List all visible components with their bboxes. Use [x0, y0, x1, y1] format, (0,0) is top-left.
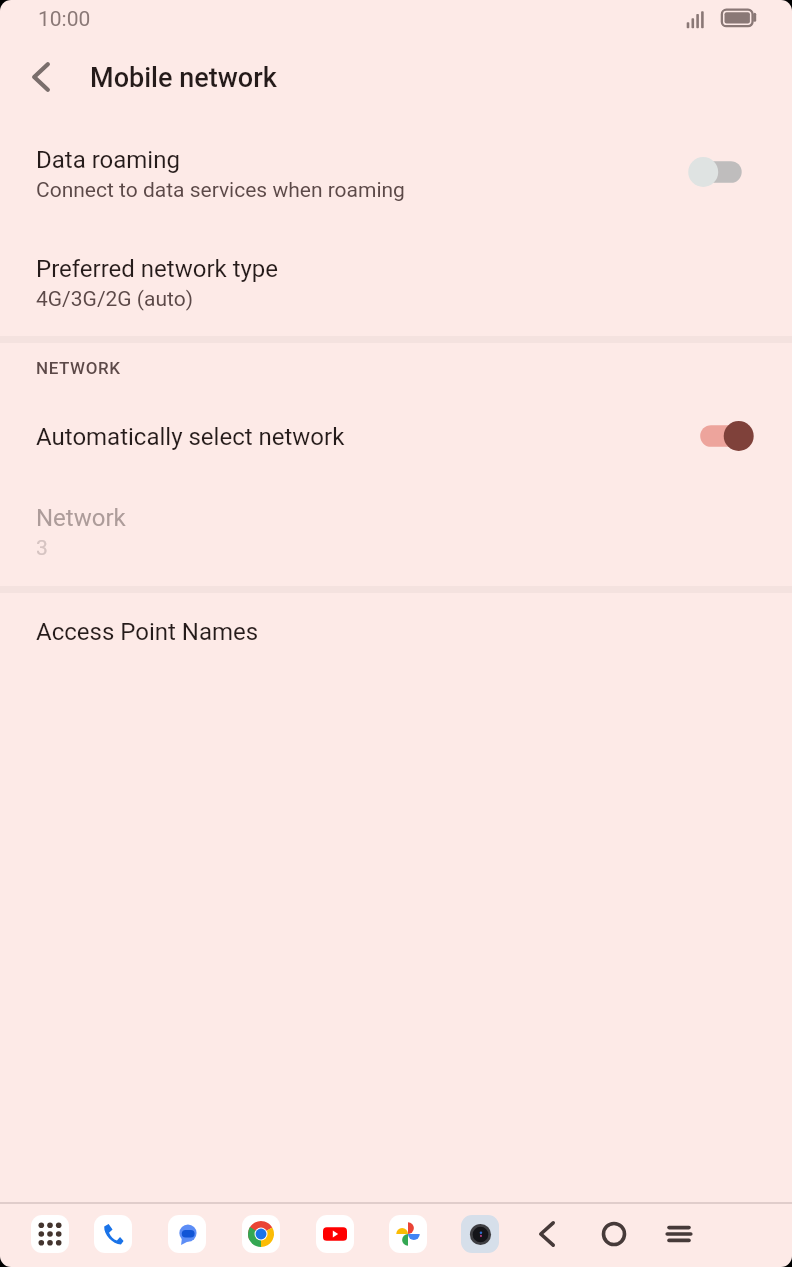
button[interactable]: Home	[589, 1209, 639, 1259]
staticText: 4G/3G/2G (auto)	[36, 287, 193, 312]
staticText: Data roaming	[36, 146, 180, 174]
button[interactable]: YouTube	[310, 1209, 360, 1259]
button[interactable]: Back	[522, 1209, 572, 1259]
button[interactable]: Camera	[455, 1209, 505, 1259]
button[interactable]: Messages	[162, 1209, 212, 1259]
button[interactable]: Preferred network type	[0, 243, 792, 317]
staticText: Preferred network type	[36, 255, 279, 283]
staticText: Mobile network	[90, 62, 277, 94]
button[interactable]: Data roaming	[0, 134, 792, 208]
staticText: Automatically select network	[36, 423, 345, 451]
staticText: Access Point Names	[36, 618, 259, 646]
staticText: 3	[36, 536, 48, 561]
staticText: Connect to data services when roaming	[36, 178, 405, 203]
button[interactable]: Switch off	[686, 149, 756, 195]
staticText: NETWORK	[36, 358, 121, 378]
button[interactable]: Access Point Names	[0, 606, 792, 654]
staticText: Network	[36, 504, 126, 532]
button[interactable]: Automatically select network	[0, 411, 792, 459]
button[interactable]: Recent apps	[654, 1209, 704, 1259]
button[interactable]: Switch on	[686, 413, 756, 459]
button[interactable]: Photos	[383, 1209, 433, 1259]
button[interactable]: Network	[0, 492, 792, 566]
button[interactable]: All apps	[25, 1209, 75, 1259]
button[interactable]: Phone	[88, 1209, 138, 1259]
staticText: 10:00	[38, 7, 91, 32]
button[interactable]: Back	[17, 53, 65, 101]
button[interactable]: Chrome	[236, 1209, 286, 1259]
